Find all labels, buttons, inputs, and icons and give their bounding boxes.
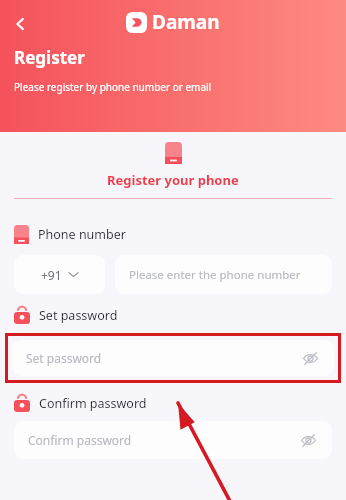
- staticText: Set password: [26, 350, 300, 366]
- staticText: Phone number: [38, 226, 126, 243]
- button[interactable]: Show password: [298, 430, 318, 450]
- staticText: Daman: [152, 9, 220, 35]
- staticText: Please register by phone number or email: [14, 80, 212, 94]
- button[interactable]: Set password: [12, 340, 334, 376]
- staticText: Register: [14, 46, 85, 69]
- button[interactable]: Show password: [300, 348, 320, 368]
- staticText: Register your phone: [107, 171, 239, 189]
- staticText: Confirm password: [39, 395, 147, 412]
- staticText: Please enter the phone number: [129, 267, 301, 283]
- staticText: Set password: [39, 307, 118, 324]
- staticText: +91: [41, 267, 62, 283]
- button[interactable]: Please enter the phone number: [115, 255, 332, 294]
- button[interactable]: +91: [14, 255, 105, 294]
- button[interactable]: Confirm password: [14, 421, 332, 459]
- button[interactable]: Back: [4, 8, 36, 40]
- staticText: Confirm password: [28, 432, 298, 448]
